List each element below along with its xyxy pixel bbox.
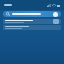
button[interactable]: Account xyxy=(53,12,58,17)
button[interactable] xyxy=(3,25,61,30)
button[interactable]: Account xyxy=(3,11,61,17)
button[interactable]: Open item xyxy=(3,19,61,24)
button[interactable]: Open item xyxy=(53,19,59,24)
